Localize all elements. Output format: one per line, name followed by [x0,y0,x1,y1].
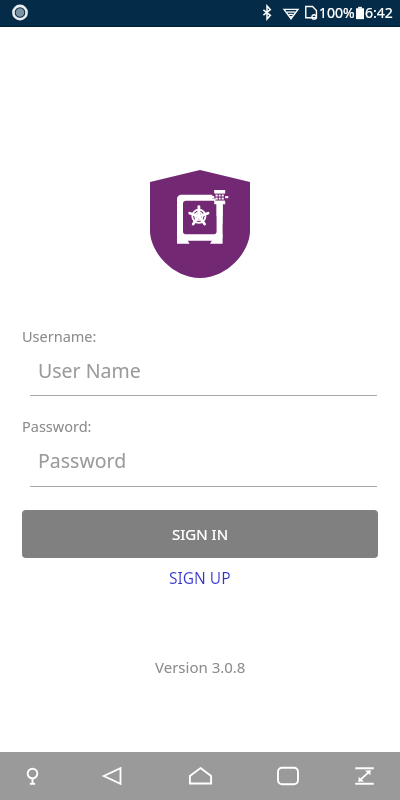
staticText: SIGN UP [169,567,231,588]
button[interactable]: User Name [22,354,378,394]
button[interactable]: Assistant [8,752,56,800]
staticText: 100% [319,3,355,22]
button[interactable]: Recent apps [264,752,312,800]
staticText: SIGN IN [172,524,229,544]
button[interactable]: Back [88,752,136,800]
staticText: Password [38,447,127,474]
staticText: Password: [22,416,92,436]
button[interactable]: Screenshot [340,752,388,800]
staticText: Username: [22,326,97,346]
button[interactable]: SIGN IN [22,510,378,558]
staticText: Version 3.0.8 [155,657,246,677]
button[interactable]: SIGN UP [159,564,241,591]
staticText: 6:42 [365,3,393,22]
staticText: User Name [38,357,141,384]
button[interactable]: Home [176,752,224,800]
button[interactable]: Password [22,444,378,484]
